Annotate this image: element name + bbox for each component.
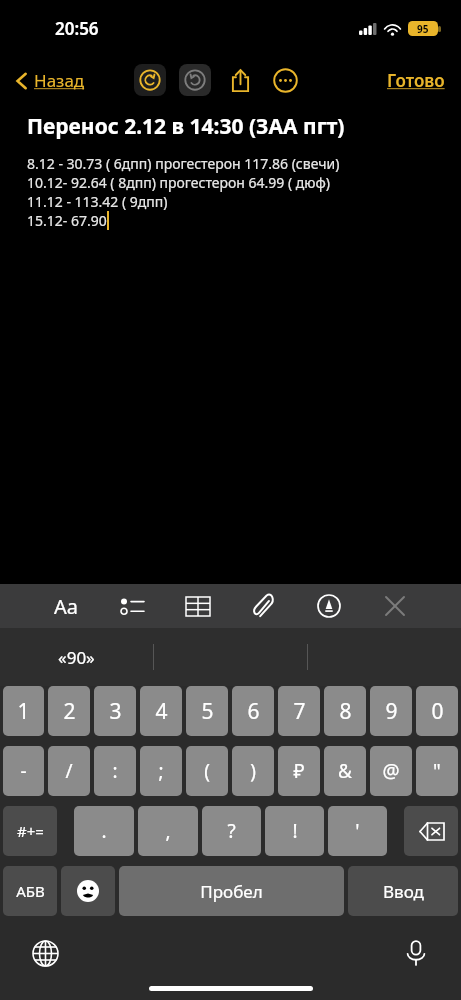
staticText: 0: [431, 697, 444, 726]
staticText: (: [204, 758, 210, 784]
button[interactable]: Разметка: [309, 586, 349, 626]
button[interactable]: -: [3, 746, 44, 796]
staticText: Aa: [54, 593, 78, 620]
staticText: ;: [158, 758, 164, 784]
button[interactable]: Вложение: [243, 586, 283, 626]
staticText: Пробел: [200, 880, 263, 903]
button[interactable]: ₽: [278, 746, 320, 796]
button[interactable]: Удалить: [404, 806, 458, 856]
button[interactable]: «90»: [0, 628, 153, 686]
button[interactable]: 8: [324, 686, 366, 736]
staticText: &: [338, 758, 352, 784]
button[interactable]: Диктовка: [399, 936, 433, 970]
button[interactable]: 4: [140, 686, 182, 736]
button[interactable]: 2: [48, 686, 90, 736]
staticText: -: [20, 758, 27, 784]
staticText: 6: [247, 697, 260, 726]
button[interactable]: Ввод: [348, 866, 458, 916]
button[interactable]: Список: [112, 586, 152, 626]
button[interactable]: Эмодзи: [61, 866, 115, 916]
staticText: 20:56: [55, 17, 99, 40]
staticText: 1: [17, 697, 30, 726]
button[interactable]: Отменить: [134, 64, 166, 96]
staticText: 2: [63, 697, 76, 726]
staticText: ): [250, 758, 256, 784]
button[interactable]: &: [324, 746, 366, 796]
staticText: .: [101, 818, 107, 844]
staticText: ": [433, 758, 441, 784]
staticText: !: [292, 818, 298, 844]
button[interactable]: 9: [370, 686, 412, 736]
staticText: 15.12- 67.90: [27, 211, 107, 230]
staticText: 11.12 - 113.42 ( 9дпп): [27, 192, 168, 211]
button[interactable]: :: [94, 746, 136, 796]
staticText: 5: [201, 697, 214, 726]
button[interactable]: Назад: [12, 63, 89, 98]
button[interactable]: !: [265, 806, 324, 856]
button[interactable]: 7: [278, 686, 320, 736]
staticText: 4: [155, 697, 168, 726]
button[interactable]: ': [328, 806, 387, 856]
staticText: 95: [417, 22, 429, 36]
button[interactable]: ;: [140, 746, 182, 796]
button[interactable]: ,: [138, 806, 198, 856]
button[interactable]: 5: [186, 686, 228, 736]
button[interactable]: Ещё: [269, 64, 301, 96]
staticText: @: [382, 758, 400, 784]
button[interactable]: #+=: [3, 806, 57, 856]
button[interactable]: Повторить: [179, 64, 211, 96]
staticText: ': [355, 818, 360, 844]
button[interactable]: ": [416, 746, 458, 796]
button[interactable]: Закрыть: [375, 586, 415, 626]
staticText: :: [112, 758, 118, 784]
button[interactable]: Пробел: [119, 866, 344, 916]
button[interactable]: Формат: [46, 586, 86, 626]
button[interactable]: Таблица: [178, 586, 218, 626]
button[interactable]: Сменить язык: [28, 936, 62, 970]
button[interactable]: @: [370, 746, 412, 796]
staticText: 9: [385, 697, 398, 726]
staticText: 3: [109, 697, 122, 726]
staticText: Готово: [387, 69, 445, 92]
button[interactable]: 0: [416, 686, 458, 736]
button[interactable]: 6: [232, 686, 274, 736]
button[interactable]: ?: [202, 806, 261, 856]
staticText: ?: [227, 818, 236, 844]
button[interactable]: (: [186, 746, 228, 796]
staticText: 10.12- 92.64 ( 8дпп) прогестерон 64.99 (…: [27, 173, 331, 192]
staticText: ₽: [293, 758, 305, 784]
staticText: /: [65, 758, 73, 784]
staticText: 8: [339, 697, 352, 726]
staticText: Перенос 2.12 в 14:30 (ЗАА пгт): [27, 112, 345, 141]
button[interactable]: ): [232, 746, 274, 796]
button[interactable]: /: [48, 746, 90, 796]
staticText: «90»: [58, 646, 95, 669]
button[interactable]: АБВ: [3, 866, 57, 916]
staticText: #+=: [17, 821, 44, 841]
staticText: 7: [293, 697, 306, 726]
staticText: АБВ: [16, 881, 45, 901]
staticText: 8.12 - 30.73 ( 6дпп) прогестерон 117.86 …: [27, 154, 340, 173]
button[interactable]: Готово: [383, 63, 449, 98]
staticText: Назад: [34, 69, 85, 92]
button[interactable]: Поделиться: [224, 64, 256, 96]
button[interactable]: 1: [3, 686, 44, 736]
staticText: ,: [165, 818, 171, 844]
button[interactable]: 3: [94, 686, 136, 736]
button[interactable]: .: [74, 806, 134, 856]
staticText: Ввод: [383, 880, 424, 903]
